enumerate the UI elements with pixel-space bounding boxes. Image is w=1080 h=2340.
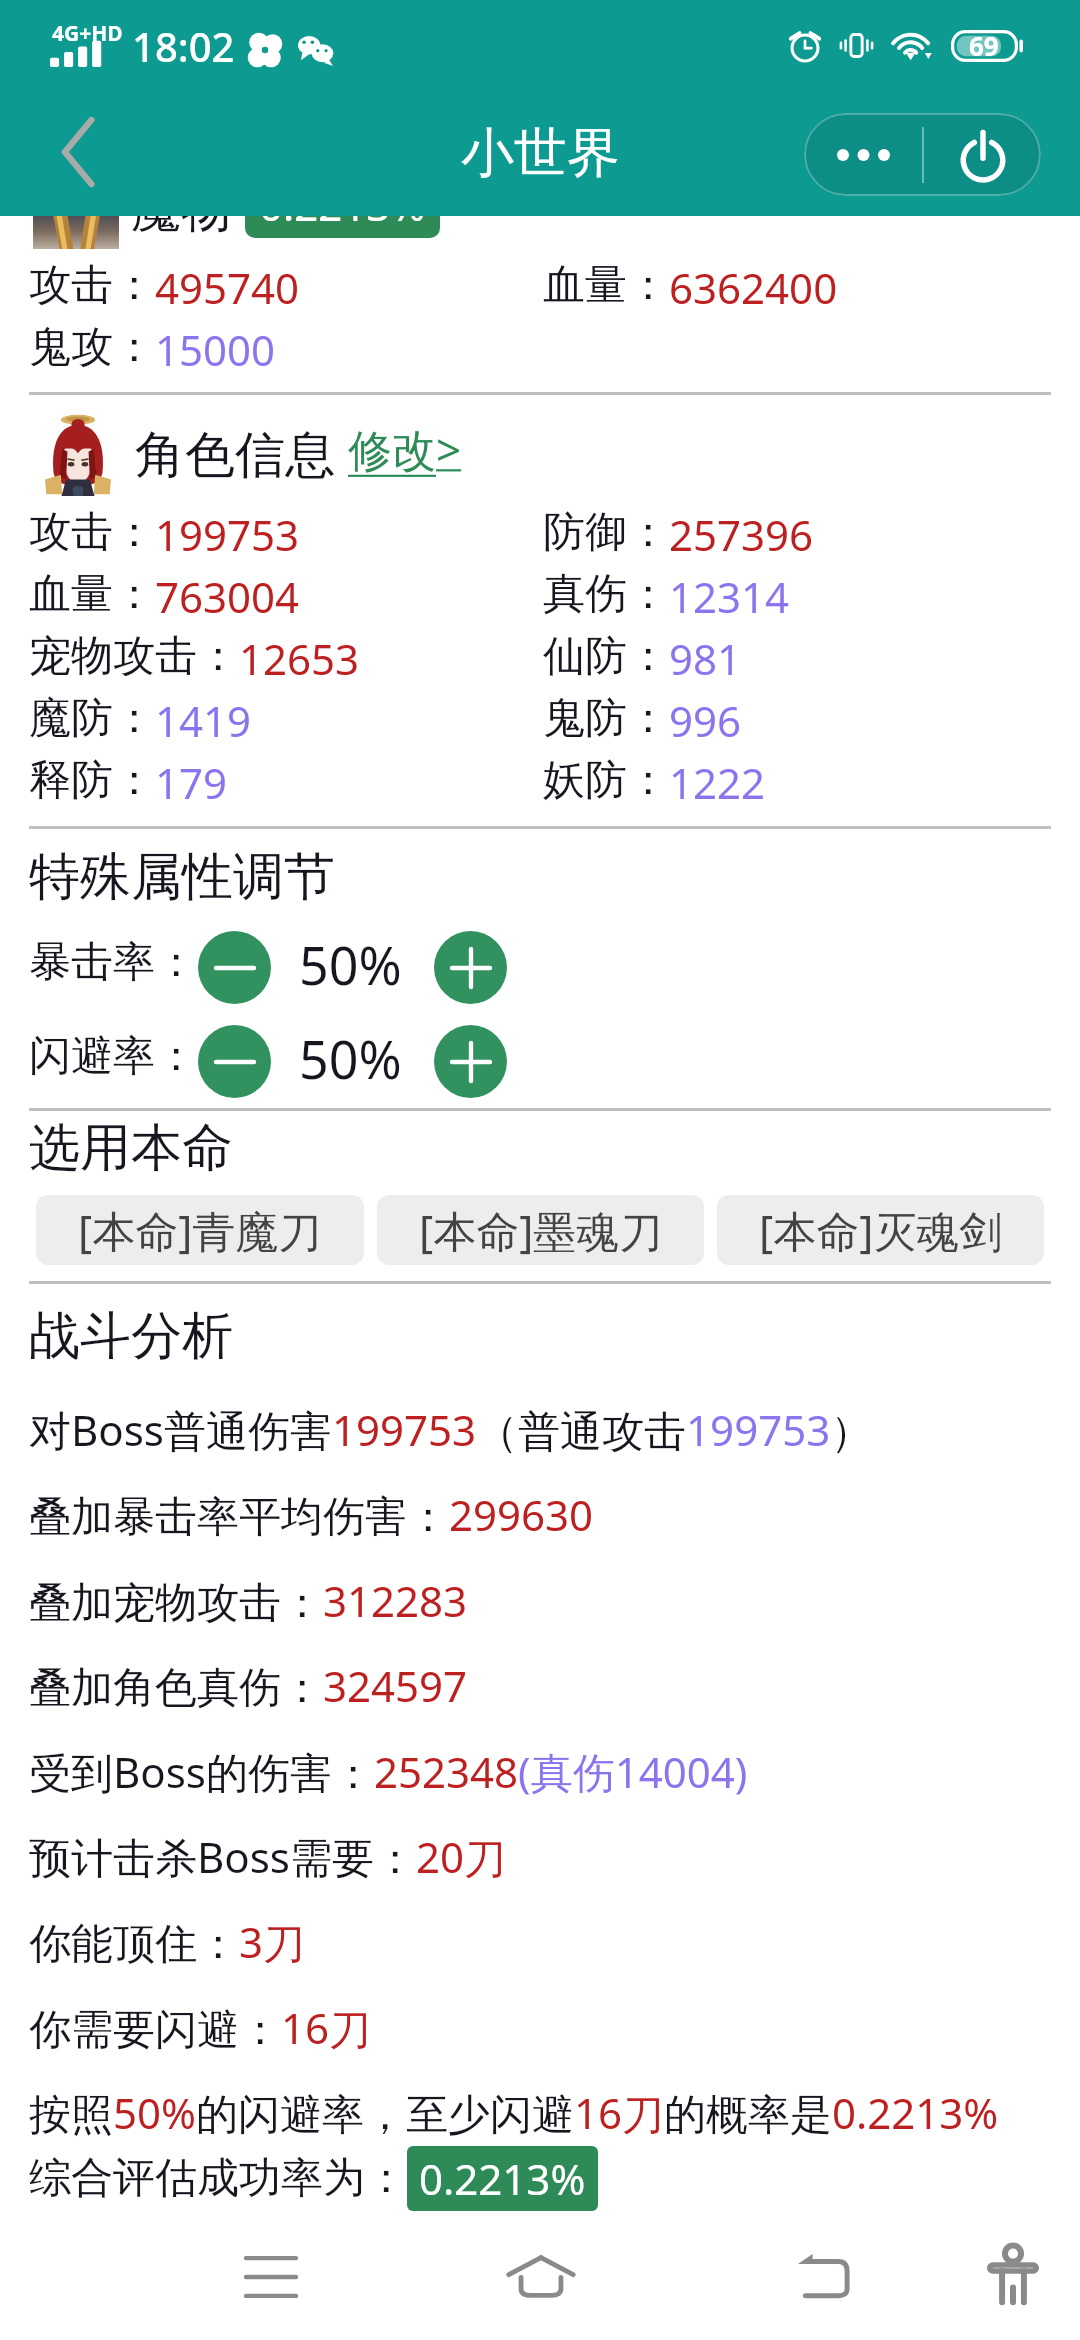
button[interactable]: Back xyxy=(38,102,122,202)
button[interactable]: Accessibility xyxy=(950,2218,1076,2332)
staticText: 防御： xyxy=(543,506,669,559)
staticText: 血量： xyxy=(543,259,669,312)
staticText: 选用本命 xyxy=(29,1116,233,1180)
staticText: 69 xyxy=(969,28,999,63)
staticText: 981 xyxy=(669,630,742,687)
staticText: 763004 xyxy=(155,568,300,625)
staticText: 战斗分析 xyxy=(29,1304,233,1368)
staticText: 综合评估成功率为： xyxy=(29,2152,407,2205)
staticText: 鬼防： xyxy=(543,692,669,745)
button[interactable]: 修改> xyxy=(348,419,462,479)
staticText: 18:02 xyxy=(132,19,235,73)
staticText: 叠加角色真伤：324597 xyxy=(29,1657,468,1714)
staticText: 暴击率： xyxy=(29,936,197,989)
staticText: 修改> xyxy=(348,419,462,479)
staticText: 预计击杀Boss需要：20刀 xyxy=(29,1828,506,1885)
staticText: 50% xyxy=(299,929,402,1000)
staticText: 受到Boss的伤害：252348(真伤14004) xyxy=(29,1743,748,1800)
button[interactable]: Decrease 暴击率： xyxy=(198,931,271,1004)
staticText: 199753 xyxy=(155,506,300,563)
staticText: 攻击： xyxy=(29,259,155,312)
button[interactable]: Decrease 闪避率： xyxy=(198,1025,271,1098)
button[interactable]: Increase 闪避率： xyxy=(434,1025,507,1098)
staticText: 叠加暴击率平均伤害：299630 xyxy=(29,1486,594,1543)
staticText: 6362400 xyxy=(669,259,838,316)
staticText: 0.2213% xyxy=(419,2150,586,2207)
button[interactable]: Back xyxy=(754,2218,894,2332)
staticText: 对Boss普通伤害199753（普通攻击199753） xyxy=(29,1401,873,1458)
button[interactable]: Recent apps xyxy=(201,2220,341,2334)
staticText: 角色信息 xyxy=(135,424,335,487)
staticText: 4G+HD xyxy=(52,19,123,48)
staticText: 血量： xyxy=(29,568,155,621)
staticText: 按照50%的闪避率，至少闪避16刀的概率是0.2213% xyxy=(29,2084,999,2141)
staticText: 攻击： xyxy=(29,506,155,559)
button[interactable]: [本命]青魔刀 xyxy=(36,1195,364,1265)
staticText: 魔防： xyxy=(29,692,155,745)
staticText: 真伤： xyxy=(543,568,669,621)
staticText: [本命]墨魂刀 xyxy=(419,1201,663,1260)
staticText: 12314 xyxy=(669,568,790,625)
staticText: 996 xyxy=(669,692,742,749)
staticText: 仙防： xyxy=(543,630,669,683)
staticText: 特殊属性调节 xyxy=(29,845,335,909)
staticText: 12653 xyxy=(239,630,360,687)
staticText: 179 xyxy=(155,754,228,811)
staticText: 鬼攻： xyxy=(29,321,155,374)
staticText: 0.2213% xyxy=(259,176,426,233)
button[interactable]: [本命]墨魂刀 xyxy=(377,1195,704,1265)
staticText: 1222 xyxy=(669,754,766,811)
staticText: 495740 xyxy=(155,259,300,316)
button[interactable]: [本命]灭魂剑 xyxy=(717,1195,1044,1265)
staticText: 叠加宠物攻击：312283 xyxy=(29,1572,468,1629)
staticText: 妖防： xyxy=(543,754,669,807)
staticText: [本命]青魔刀 xyxy=(78,1201,322,1260)
staticText: 257396 xyxy=(669,506,814,563)
button[interactable]: Increase 暴击率： xyxy=(434,931,507,1004)
staticText: 魔物 xyxy=(131,178,231,241)
button[interactable]: Home xyxy=(471,2219,611,2333)
staticText: 释防： xyxy=(29,754,155,807)
staticText: 闪避率： xyxy=(29,1030,197,1083)
button[interactable]: Close xyxy=(924,113,1041,196)
staticText: 1419 xyxy=(155,692,252,749)
staticText: 50% xyxy=(299,1023,402,1094)
staticText: [本命]灭魂剑 xyxy=(759,1201,1003,1260)
staticText: 你能顶住：3刀 xyxy=(29,1913,306,1970)
button[interactable]: More options xyxy=(804,113,922,196)
staticText: 小世界 xyxy=(461,120,620,187)
staticText: 宠物攻击： xyxy=(29,630,239,683)
staticText: 你需要闪避：16刀 xyxy=(29,1999,372,2056)
staticText: 15000 xyxy=(155,321,276,378)
